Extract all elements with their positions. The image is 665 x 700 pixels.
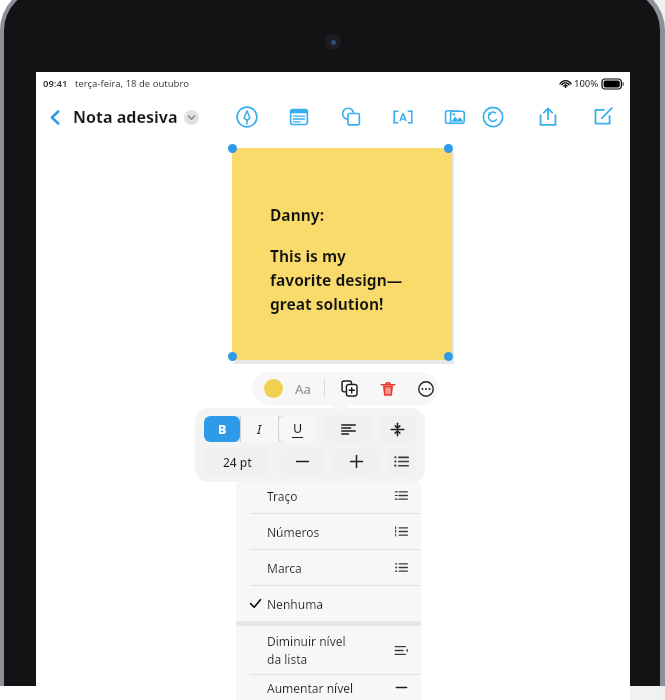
staticText: B	[218, 421, 227, 438]
button[interactable]: Mais	[415, 378, 436, 399]
button[interactable]: Texto	[284, 102, 314, 132]
button[interactable]: Marca	[236, 550, 421, 585]
staticText: Nenhuma	[267, 596, 324, 612]
staticText: Danny:	[270, 204, 324, 225]
staticText: U	[293, 420, 303, 437]
staticText: terça-feira, 18 de outubro	[75, 77, 189, 90]
button[interactable]: Ajustar	[379, 416, 416, 442]
button[interactable]: Aa	[295, 380, 311, 398]
staticText: This is my	[270, 245, 346, 266]
button[interactable]: Aumentar nível	[236, 675, 421, 700]
button[interactable]: 24 pt	[204, 449, 270, 474]
staticText: 24 pt	[223, 454, 252, 470]
button[interactable]: Mídia	[440, 102, 470, 132]
button[interactable]: Danny:	[232, 148, 452, 360]
button[interactable]: Cor	[264, 379, 283, 398]
button[interactable]: Diminuir nível	[236, 626, 421, 674]
button[interactable]: Aumentar	[333, 449, 379, 474]
button[interactable]: Desenhar	[232, 102, 262, 132]
staticText: 09:41	[43, 77, 68, 90]
button[interactable]: Lista	[387, 449, 416, 474]
staticText: Diminuir nível	[267, 633, 346, 649]
button[interactable]: Nota adesiva	[73, 106, 199, 128]
staticText: Traço	[267, 488, 298, 504]
staticText: favorite design—	[270, 269, 403, 290]
button[interactable]: Caixa de texto	[388, 102, 418, 132]
staticText: Números	[267, 524, 320, 540]
button[interactable]: Duplicar	[339, 378, 360, 399]
button[interactable]: Desfazer	[478, 102, 508, 132]
button[interactable]: Novo	[588, 102, 618, 132]
staticText: 100%	[574, 77, 599, 90]
button[interactable]: Voltar	[42, 104, 68, 130]
staticText: Marca	[267, 560, 302, 576]
staticText: Aumentar nível	[267, 680, 354, 696]
button[interactable]: U	[279, 416, 316, 442]
button[interactable]: Traço	[236, 478, 421, 513]
staticText: Aa	[295, 380, 311, 398]
button[interactable]: Formas	[336, 102, 366, 132]
button[interactable]: Compartilhar	[533, 102, 563, 132]
staticText: great solution!	[270, 293, 384, 314]
staticText: da lista	[267, 651, 308, 667]
button[interactable]: Alinhamento	[325, 416, 371, 442]
button[interactable]: Diminuir	[279, 449, 325, 474]
staticText: Nota adesiva	[73, 106, 178, 128]
staticText: I	[257, 421, 262, 438]
button[interactable]: Números	[236, 514, 421, 549]
button[interactable]: Nenhuma	[236, 586, 421, 621]
button[interactable]: I	[241, 416, 278, 442]
button[interactable]: Apagar	[377, 378, 398, 399]
button[interactable]: B	[204, 416, 240, 442]
